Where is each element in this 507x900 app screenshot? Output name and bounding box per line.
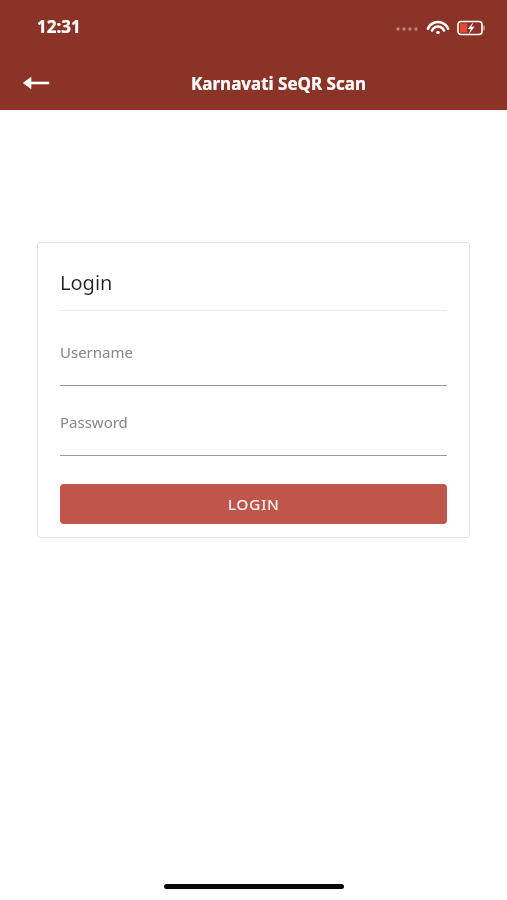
button[interactable]: LOGIN [60,484,447,524]
staticText: Password [60,412,128,432]
staticText: Login [60,269,113,296]
staticText: 12:31 [37,15,81,38]
staticText: Username [60,342,133,362]
button[interactable]: Username [60,342,447,386]
staticText: Karnavati SeQR Scan [191,72,366,95]
button[interactable]: Password [60,412,447,456]
staticText: LOGIN [228,494,280,514]
button[interactable]: Back [10,57,62,109]
